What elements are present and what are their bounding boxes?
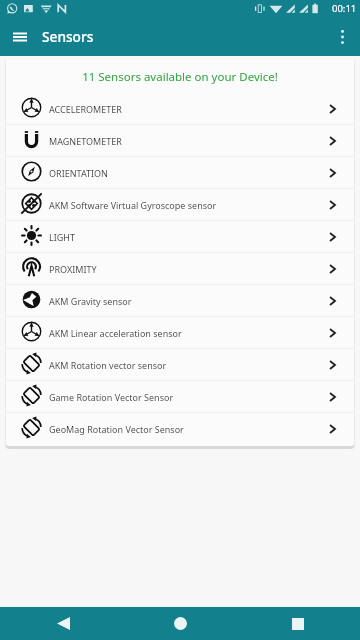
button[interactable]: Menu <box>0 17 39 56</box>
staticText: LIGHT <box>49 231 329 243</box>
staticText: AKM Rotation vector sensor <box>49 359 329 371</box>
staticText: AKM Gravity sensor <box>49 295 329 307</box>
button[interactable]: AKM Linear acceleration sensor <box>6 317 354 349</box>
staticText: 11 Sensors available on your Device! <box>82 69 278 85</box>
button[interactable]: ORIENTATION <box>6 157 354 189</box>
button[interactable]: AKM Gravity sensor <box>6 285 354 317</box>
button[interactable]: Recents <box>278 607 318 640</box>
button[interactable]: AKM Software Virtual Gyroscope sensor <box>6 189 354 221</box>
staticText: GeoMag Rotation Vector Sensor <box>49 423 329 435</box>
button[interactable]: Back <box>43 607 83 640</box>
staticText: ACCELEROMETER <box>49 103 329 115</box>
button[interactable]: PROXIMITY <box>6 253 354 285</box>
staticText: ORIENTATION <box>49 167 329 179</box>
button[interactable]: Game Rotation Vector Sensor <box>6 381 354 413</box>
button[interactable]: Home <box>160 607 200 640</box>
staticText: PROXIMITY <box>49 263 329 275</box>
button[interactable]: ACCELEROMETER <box>6 93 354 125</box>
staticText: AKM Software Virtual Gyroscope sensor <box>49 199 329 211</box>
staticText: MAGNETOMETER <box>49 135 329 147</box>
button[interactable]: AKM Rotation vector sensor <box>6 349 354 381</box>
button[interactable]: More options <box>324 17 360 56</box>
staticText: Sensors <box>42 27 94 46</box>
button[interactable]: MAGNETOMETER <box>6 125 354 157</box>
staticText: Game Rotation Vector Sensor <box>49 391 329 403</box>
button[interactable]: GeoMag Rotation Vector Sensor <box>6 413 354 445</box>
staticText: 00:11 <box>332 2 357 15</box>
button[interactable]: LIGHT <box>6 221 354 253</box>
staticText: AKM Linear acceleration sensor <box>49 327 329 339</box>
